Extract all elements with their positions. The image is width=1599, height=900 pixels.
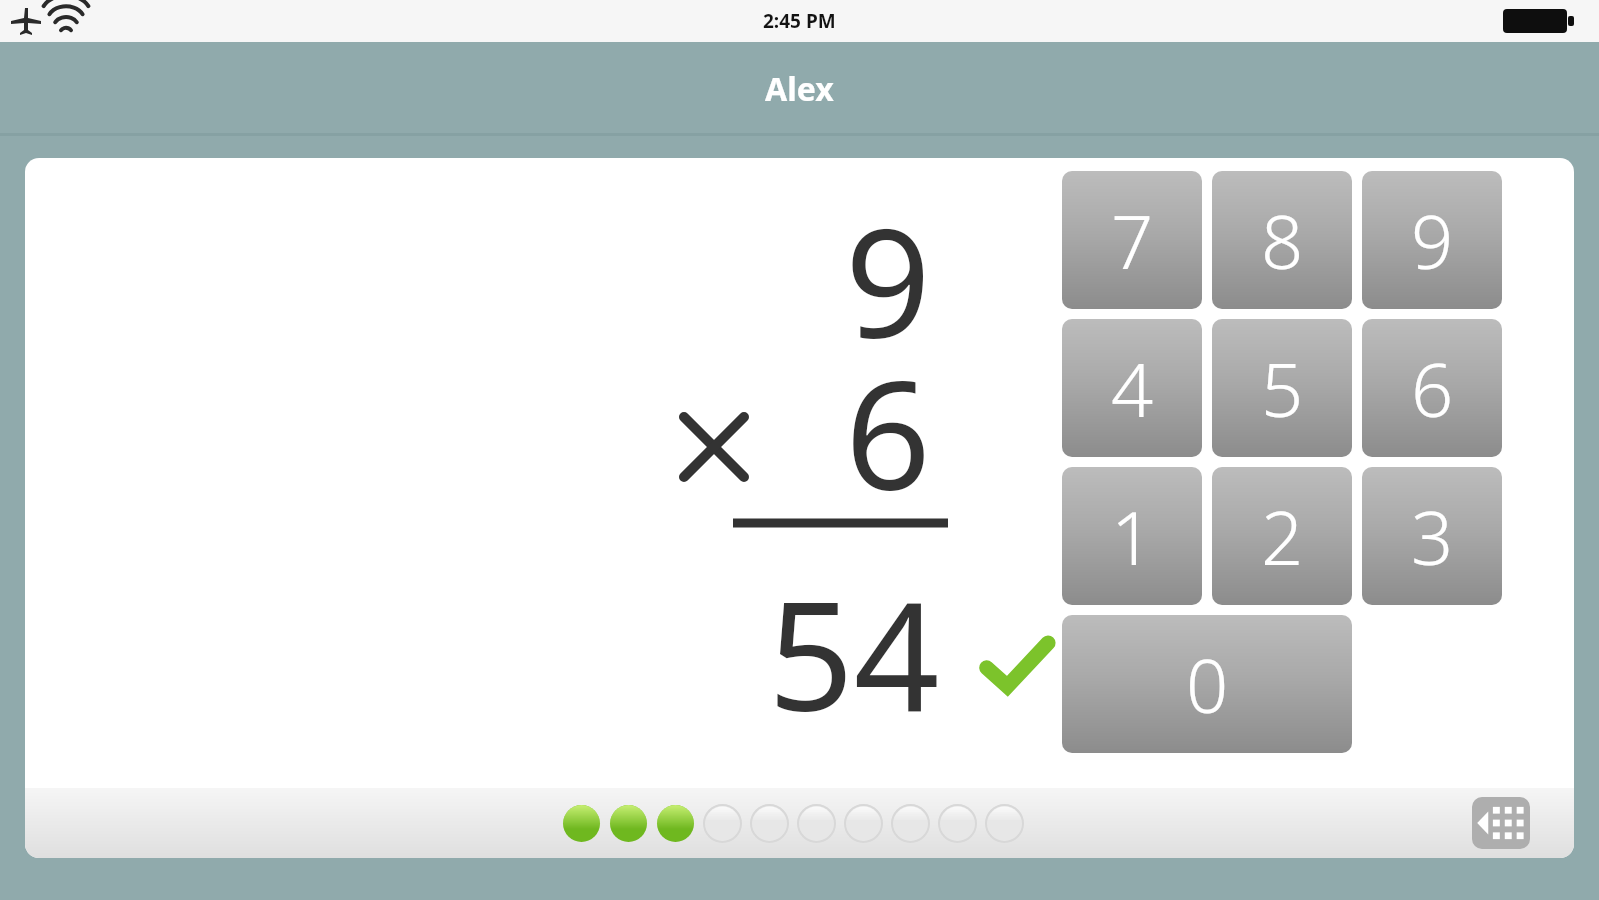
button[interactable]: 3 xyxy=(1362,467,1502,605)
staticText: 6 xyxy=(845,330,931,534)
staticText: 8 xyxy=(1261,190,1304,291)
staticText: 9 xyxy=(1411,190,1454,291)
staticText: 2:45 PM xyxy=(763,8,836,34)
staticText: 2 xyxy=(1261,486,1304,587)
button[interactable]: 0 xyxy=(1062,615,1352,753)
button[interactable]: 9 xyxy=(1362,171,1502,309)
staticText: 54 xyxy=(768,551,940,755)
staticText: 5 xyxy=(1261,338,1304,439)
button[interactable]: 6 xyxy=(1362,319,1502,457)
staticText: 1 xyxy=(1111,486,1154,587)
button[interactable]: 1 xyxy=(1062,467,1202,605)
staticText: 7 xyxy=(1111,190,1154,291)
staticText: 4 xyxy=(1111,338,1154,439)
staticText: 0 xyxy=(1186,634,1229,735)
staticText: 3 xyxy=(1411,486,1454,587)
button[interactable]: 5 xyxy=(1212,319,1352,457)
button[interactable]: 4 xyxy=(1062,319,1202,457)
staticText: Alex xyxy=(765,67,834,111)
button[interactable]: Hide keyboard xyxy=(1472,797,1530,849)
staticText: 9 xyxy=(845,178,931,382)
button[interactable]: 8 xyxy=(1212,171,1352,309)
staticText: 6 xyxy=(1411,338,1454,439)
button[interactable]: 7 xyxy=(1062,171,1202,309)
button[interactable]: 2 xyxy=(1212,467,1352,605)
